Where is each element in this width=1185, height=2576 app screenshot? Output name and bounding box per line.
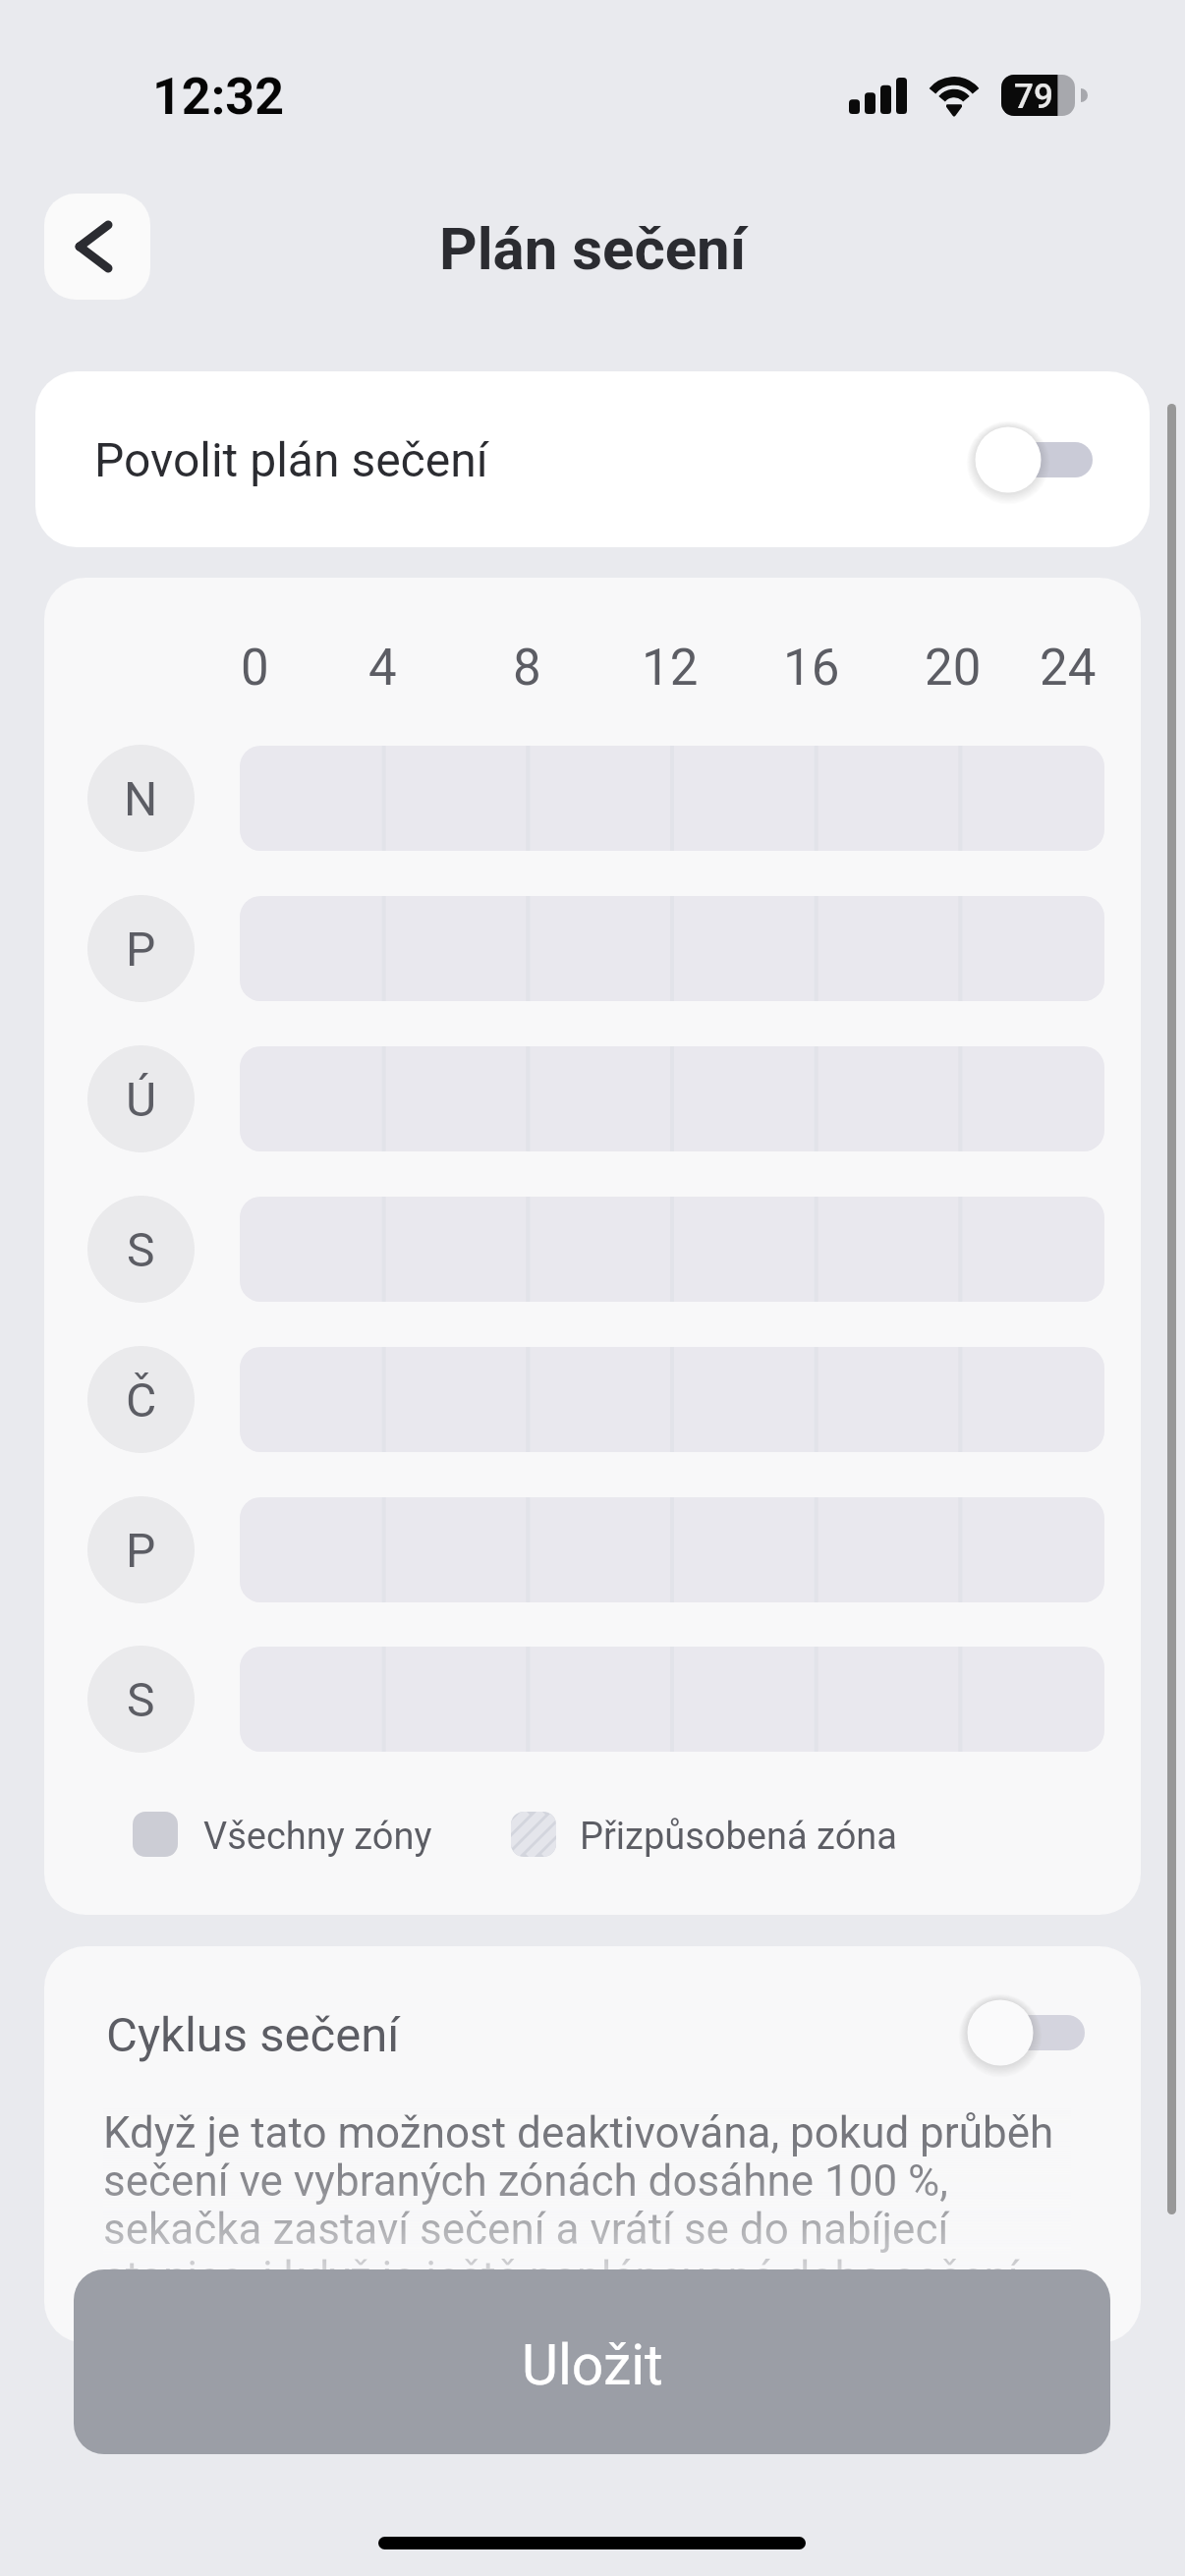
staticText: 24 — [1040, 639, 1097, 698]
staticText: 20 — [925, 639, 982, 698]
button[interactable]: Back — [44, 194, 150, 300]
staticText: 16 — [783, 639, 840, 698]
button[interactable]: Uložit — [74, 2269, 1110, 2454]
staticText: 0 — [241, 639, 269, 698]
staticText: Přizpůsobená zóna — [580, 1815, 897, 1859]
staticText: 4 — [368, 639, 397, 698]
staticText: N — [124, 771, 158, 826]
button[interactable]: Cyklus sečení — [959, 1993, 1085, 2072]
button[interactable]: Povolit plán sečení — [967, 420, 1093, 499]
staticText: Uložit — [522, 2332, 663, 2398]
button[interactable]: Povolit plán sečení — [35, 371, 1150, 547]
staticText: Cyklus sečení — [106, 2007, 400, 2063]
staticText: Plán sečení — [439, 214, 747, 283]
staticText: Ú — [126, 1072, 157, 1127]
staticText: Č — [126, 1372, 157, 1428]
staticText: S — [127, 1222, 155, 1277]
staticText: 12 — [642, 639, 699, 698]
staticText: 12:32 — [152, 67, 284, 127]
staticText: 8 — [513, 639, 541, 698]
staticText: S — [127, 1672, 155, 1727]
staticText: Všechny zóny — [203, 1815, 432, 1859]
staticText: Povolit plán sečení — [94, 432, 488, 487]
staticText: P — [126, 1523, 156, 1578]
staticText: P — [126, 922, 156, 977]
button[interactable]: Cyklus sečení — [44, 1946, 1141, 2092]
staticText: Když je tato možnost deaktivována, pokud… — [103, 2107, 1071, 2303]
staticText: 79 — [1014, 77, 1053, 117]
